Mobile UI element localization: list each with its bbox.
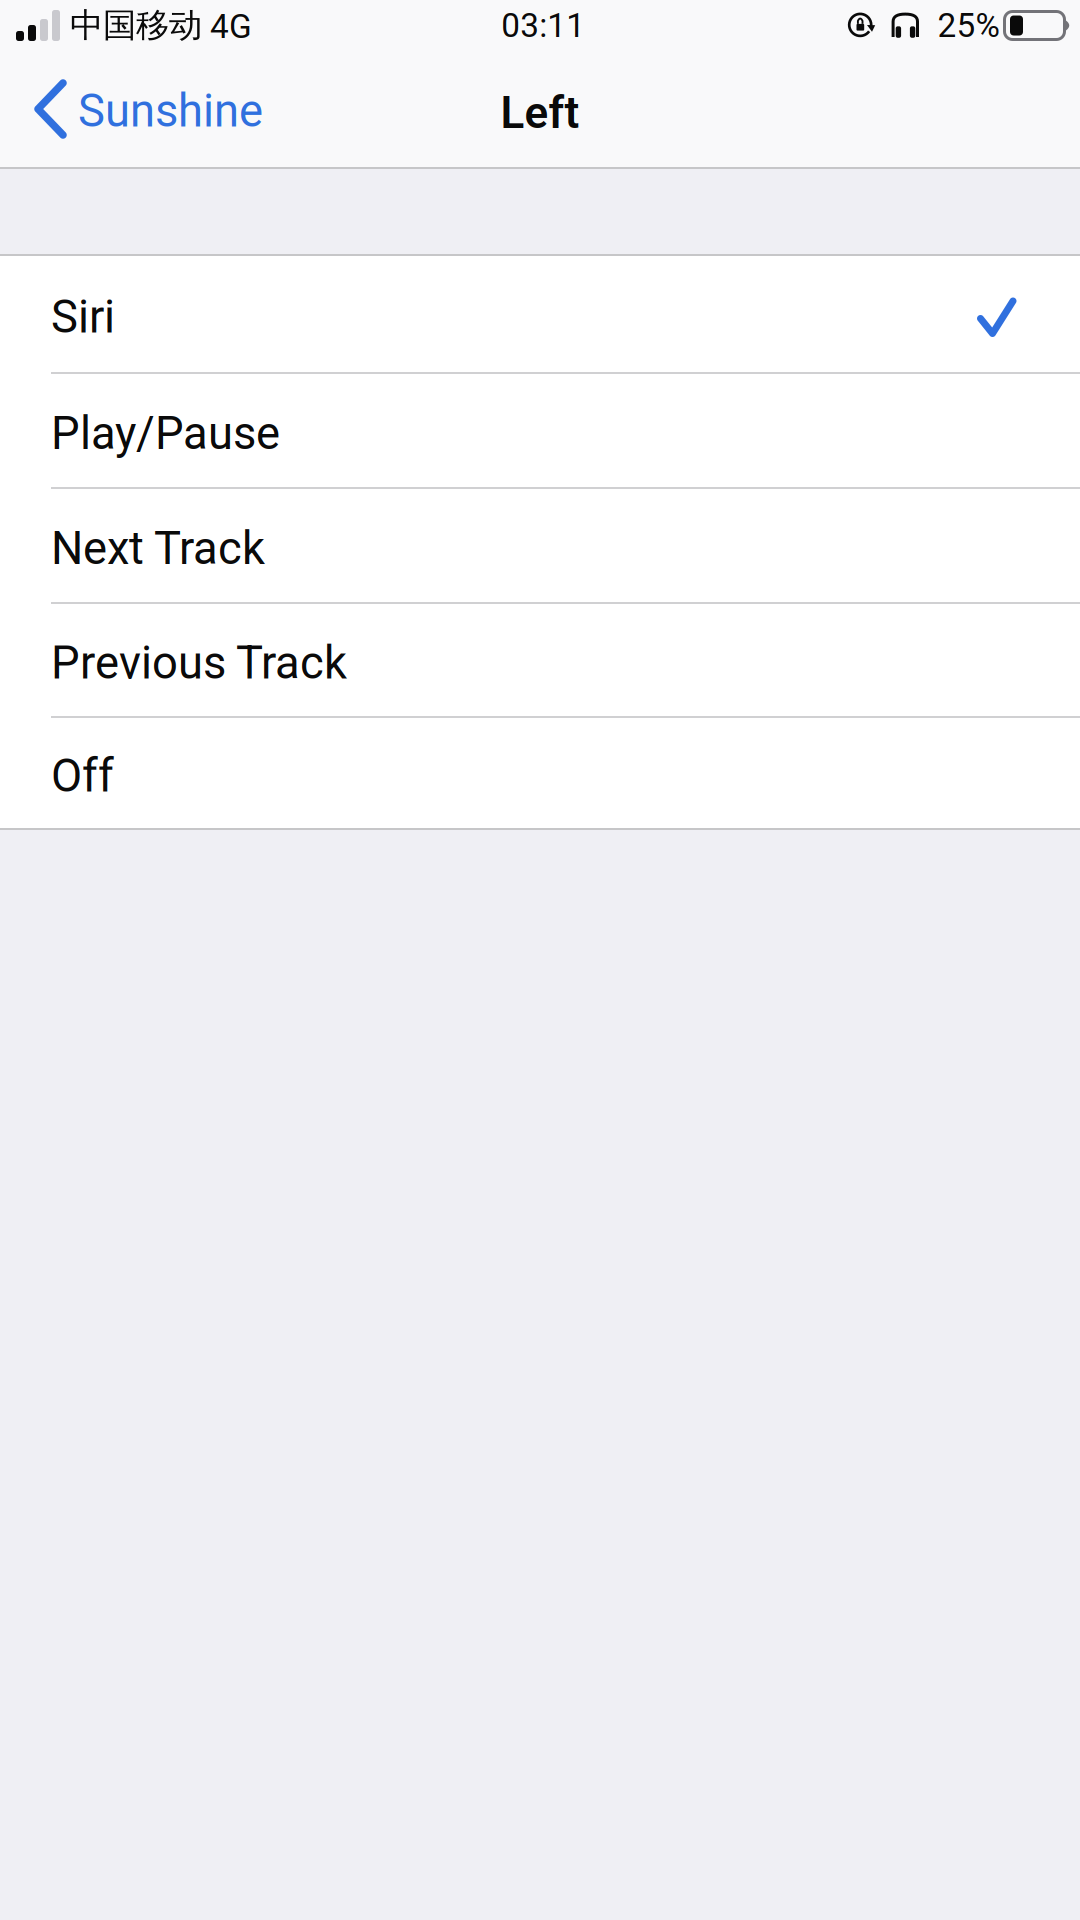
button[interactable]: Off: [0, 718, 1080, 828]
staticText: 中国移动 4G: [70, 4, 252, 46]
staticText: Next Track: [51, 522, 265, 575]
staticText: 03:11: [501, 6, 585, 45]
staticText: Play/Pause: [51, 407, 280, 460]
button[interactable]: Sunshine: [0, 51, 283, 167]
button[interactable]: Siri: [0, 256, 1080, 372]
staticText: Siri: [51, 290, 115, 343]
staticText: 25%: [937, 6, 999, 45]
staticText: Sunshine: [78, 84, 263, 137]
staticText: Previous Track: [51, 636, 347, 689]
staticText: Off: [51, 749, 114, 802]
button[interactable]: Previous Track: [0, 604, 1080, 716]
staticText: Left: [500, 87, 579, 139]
button[interactable]: Play/Pause: [0, 374, 1080, 487]
button[interactable]: Next Track: [0, 489, 1080, 602]
